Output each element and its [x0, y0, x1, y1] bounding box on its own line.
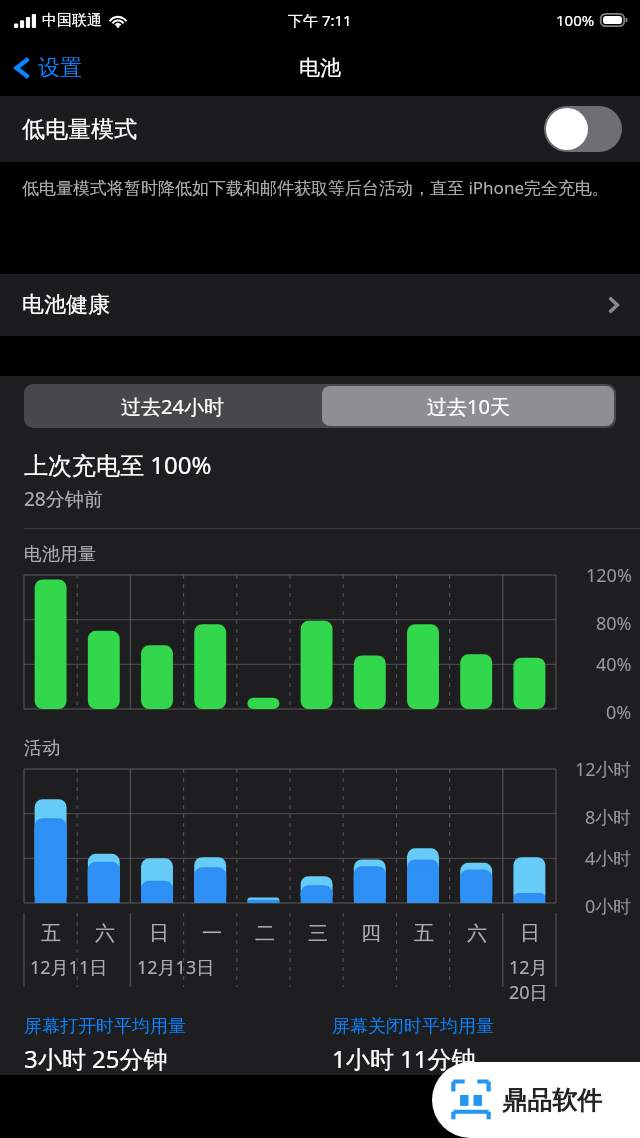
staticText: 低电量模式 [22, 115, 137, 144]
staticText: 过去24小时 [121, 393, 224, 420]
staticText: 4小时 [585, 846, 632, 871]
staticText: 下午 7:11 [288, 10, 352, 30]
button[interactable]: 低电量模式 [0, 96, 640, 162]
staticText: 1小时 11分钟 [332, 1042, 476, 1075]
staticText: 中国联通 [42, 11, 102, 30]
button[interactable]: 电池健康 [0, 274, 640, 336]
staticText: 屏幕打开时平均用量 [24, 1015, 186, 1038]
staticText: 3小时 25分钟 [24, 1042, 168, 1075]
staticText: 12月20日 [509, 955, 562, 1005]
staticText: 40% [596, 652, 632, 677]
button[interactable]: 过去24小时 [24, 384, 320, 428]
staticText: 电池 [299, 55, 341, 81]
staticText: 8小时 [585, 805, 632, 830]
staticText: 活动 [24, 737, 60, 760]
staticText: 屏幕关闭时平均用量 [332, 1015, 494, 1038]
staticText: 日 [149, 921, 169, 946]
staticText: 12月11日 [30, 955, 108, 980]
staticText: 四 [361, 921, 381, 946]
staticText: 五 [414, 921, 434, 946]
staticText: 六 [467, 921, 487, 946]
staticText: 六 [95, 921, 115, 946]
staticText: 日 [520, 921, 540, 946]
button[interactable]: 过去10天 [322, 386, 614, 426]
staticText: 电池健康 [22, 291, 110, 319]
staticText: 80% [596, 611, 632, 636]
button[interactable]: 设置 [0, 46, 96, 90]
staticText: 0小时 [585, 894, 632, 919]
staticText: 鼎品软件 [502, 1085, 602, 1116]
staticText: 28分钟前 [24, 486, 103, 512]
staticText: 100% [556, 10, 595, 30]
button[interactable]: 低电量模式 开关 [544, 106, 622, 152]
staticText: 一 [202, 921, 222, 946]
staticText: 12小时 [575, 757, 632, 782]
staticText: 120% [586, 563, 632, 588]
staticText: 三 [308, 921, 328, 946]
staticText: 12月13日 [137, 955, 215, 980]
staticText: 电池用量 [24, 543, 96, 566]
staticText: 五 [41, 921, 61, 946]
staticText: 过去10天 [427, 393, 510, 420]
staticText: 上次充电至 100% [24, 448, 212, 481]
staticText: 二 [255, 921, 275, 946]
staticText: 设置 [38, 54, 82, 82]
staticText: 0% [606, 700, 632, 725]
staticText: 低电量模式将暂时降低如下载和邮件获取等后台活动，直至 iPhone完全充电。 [22, 176, 609, 199]
